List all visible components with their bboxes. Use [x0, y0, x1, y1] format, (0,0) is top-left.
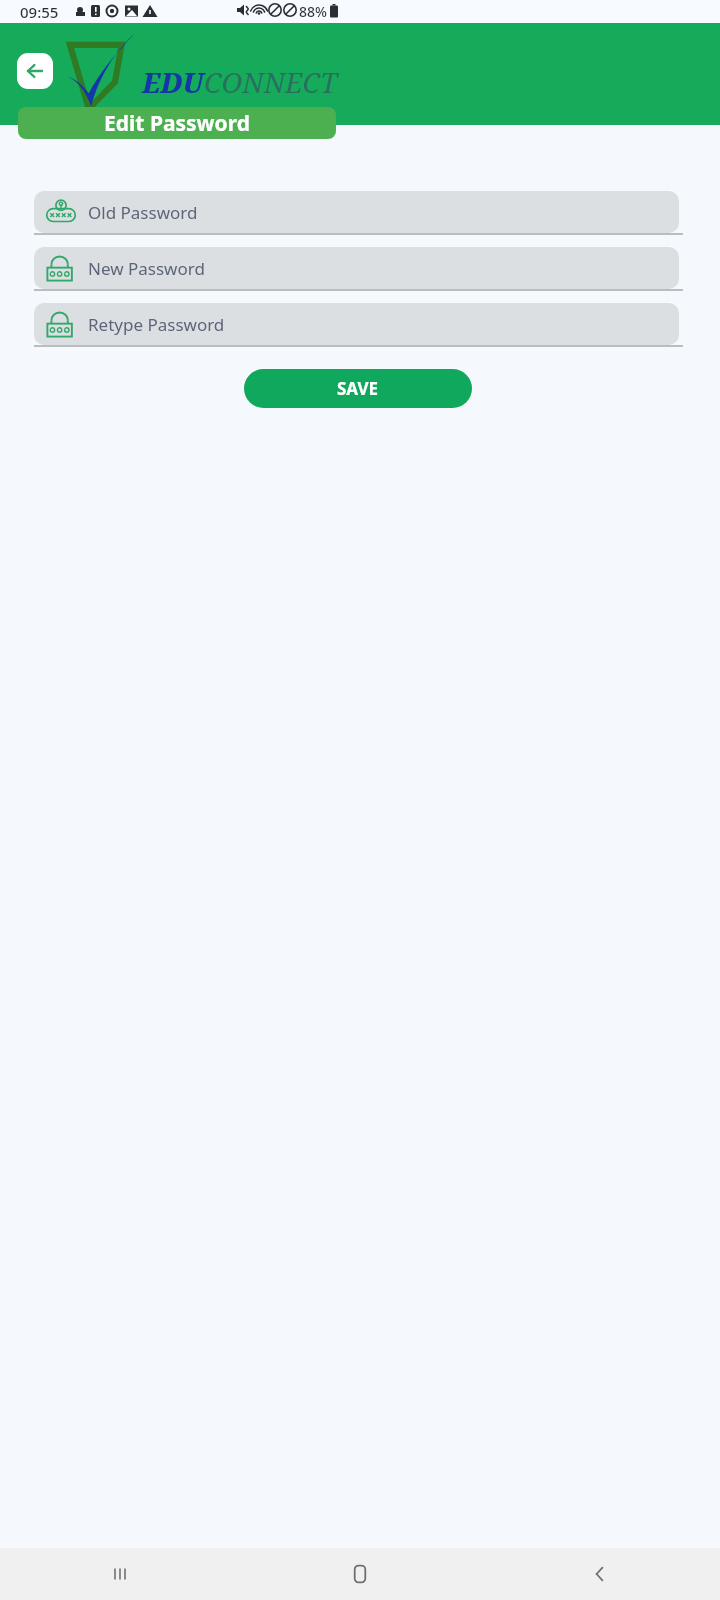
staticText: 88%: [299, 2, 327, 21]
staticText: Edit Password: [104, 109, 250, 138]
staticText: Old Password: [88, 201, 198, 224]
staticText: SAVE: [337, 377, 379, 400]
button[interactable]: SAVE: [244, 369, 472, 408]
staticText: New Password: [88, 257, 205, 280]
button[interactable]: New Password: [34, 247, 683, 291]
button[interactable]: Home: [240, 1548, 480, 1600]
staticText: CONNECT: [204, 63, 338, 101]
staticText: Retype Password: [88, 313, 225, 336]
button[interactable]: Back: [17, 53, 53, 89]
button[interactable]: Recents: [0, 1548, 240, 1600]
button[interactable]: Old Password: [34, 191, 683, 235]
staticText: 09:55: [20, 2, 59, 22]
staticText: EDU: [142, 63, 204, 101]
button[interactable]: Back: [480, 1548, 720, 1600]
button[interactable]: Retype Password: [34, 303, 683, 347]
